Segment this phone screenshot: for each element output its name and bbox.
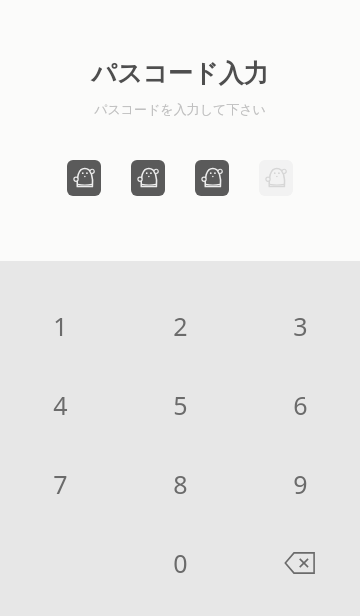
button[interactable]: Backspace — [240, 523, 360, 602]
button[interactable]: 2 — [120, 286, 240, 365]
button[interactable]: 0 — [120, 523, 240, 602]
staticText: パスコード入力 — [91, 58, 269, 89]
button[interactable]: 9 — [240, 444, 360, 523]
staticText: 9 — [293, 467, 308, 501]
button[interactable]: Entered digit — [67, 160, 101, 196]
button[interactable]: 3 — [240, 286, 360, 365]
staticText: 3 — [293, 309, 308, 343]
button[interactable]: 8 — [120, 444, 240, 523]
button[interactable]: 7 — [0, 444, 120, 523]
staticText: パスコードを入力して下さい — [94, 101, 266, 117]
staticText: 4 — [53, 388, 68, 422]
button[interactable]: Entered digit — [195, 160, 229, 196]
staticText: 6 — [293, 388, 308, 422]
staticText: 8 — [173, 467, 188, 501]
staticText: 1 — [53, 309, 68, 343]
button[interactable]: 6 — [240, 365, 360, 444]
button[interactable]: Empty digit — [259, 160, 293, 196]
staticText: 5 — [173, 388, 188, 422]
button[interactable]: 5 — [120, 365, 240, 444]
button[interactable]: Entered digit — [131, 160, 165, 196]
button[interactable]: 1 — [0, 286, 120, 365]
staticText: 7 — [53, 467, 68, 501]
button[interactable]: 4 — [0, 365, 120, 444]
staticText: 0 — [173, 546, 188, 580]
staticText: 2 — [173, 309, 188, 343]
